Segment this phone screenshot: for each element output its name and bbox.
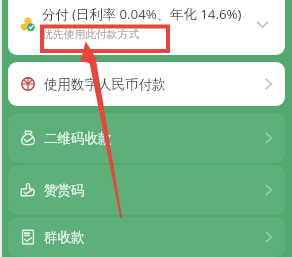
button[interactable]: Collapse bbox=[255, 18, 268, 31]
staticText: 优先使用此付款方式 bbox=[42, 28, 140, 42]
button[interactable]: 使用数字人民币付款 bbox=[8, 62, 285, 106]
button[interactable]: 赞赏码 bbox=[8, 165, 285, 215]
button[interactable]: 群收款 bbox=[8, 217, 285, 257]
staticText: 群收款 bbox=[44, 229, 85, 246]
staticText: 二维码收款 bbox=[44, 130, 112, 147]
staticText: 使用数字人民币付款 bbox=[44, 76, 166, 93]
button[interactable]: 二维码收款 bbox=[8, 113, 285, 163]
button[interactable]: 分付 (日利率 0.04%、年化 14.6%) bbox=[8, 0, 285, 55]
staticText: 分付 (日利率 0.04%、年化 14.6%) bbox=[42, 5, 242, 23]
staticText: 赞赏码 bbox=[44, 182, 85, 199]
